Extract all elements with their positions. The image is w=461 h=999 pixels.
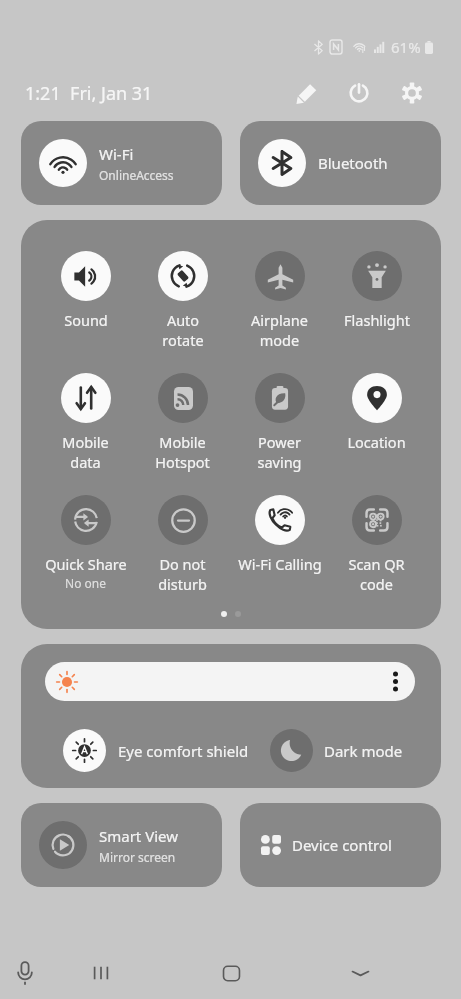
button[interactable]: Bluetooth: [240, 121, 441, 205]
button[interactable]: Smart View: [21, 803, 222, 887]
staticText: Eye comfort shield: [118, 741, 249, 761]
staticText: Wi-Fi: [99, 144, 134, 164]
staticText: OnlineAccess: [99, 167, 174, 183]
staticText: Location: [347, 432, 406, 452]
staticText: Power saving: [257, 432, 302, 472]
button[interactable]: Brightness: [45, 662, 415, 701]
staticText: No one: [65, 575, 106, 591]
button[interactable]: Eye comfort shield: [63, 729, 249, 772]
button[interactable]: Dark mode: [270, 729, 403, 772]
button[interactable]: Flashlight: [328, 251, 425, 373]
button[interactable]: Scan QR code: [328, 495, 425, 617]
staticText: Do not disturb: [158, 554, 207, 594]
staticText: Smart View: [99, 826, 179, 846]
button[interactable]: Recents: [79, 951, 123, 995]
button[interactable]: Power saving: [231, 373, 328, 495]
staticText: Auto rotate: [162, 310, 204, 350]
staticText: Quick Share: [45, 554, 127, 574]
button[interactable]: Wi-Fi: [21, 121, 222, 205]
button[interactable]: Location: [328, 373, 425, 495]
button[interactable]: Mobile Hotspot: [134, 373, 231, 495]
button[interactable]: Mobile data: [37, 373, 134, 495]
staticText: Mobile data: [62, 432, 109, 472]
button[interactable]: Home: [209, 951, 253, 995]
button[interactable]: Do not disturb: [134, 495, 231, 617]
button[interactable]: Airplane mode: [231, 251, 328, 373]
staticText: Wi-Fi Calling: [238, 554, 322, 574]
staticText: Mirror screen: [99, 849, 176, 865]
button[interactable]: Quick Share: [37, 495, 134, 617]
button[interactable]: Voice input: [3, 951, 47, 995]
staticText: Scan QR code: [348, 554, 405, 594]
button[interactable]: Edit: [285, 71, 329, 115]
staticText: 61%: [391, 37, 421, 57]
staticText: Airplane mode: [251, 310, 308, 350]
button[interactable]: Collapse: [338, 951, 382, 995]
button[interactable]: Settings: [390, 71, 434, 115]
staticText: Bluetooth: [318, 153, 388, 173]
staticText: Dark mode: [324, 741, 403, 761]
staticText: Sound: [64, 310, 108, 330]
staticText: Flashlight: [344, 310, 410, 330]
staticText: Mobile Hotspot: [155, 432, 210, 472]
staticText: Device control: [292, 835, 392, 855]
button[interactable]: Sound: [37, 251, 134, 373]
button[interactable]: Device control: [240, 803, 441, 887]
button[interactable]: Auto rotate: [134, 251, 231, 373]
button[interactable]: Power: [337, 71, 381, 115]
staticText: 1:21 Fri, Jan 31: [25, 81, 153, 106]
button[interactable]: Wi-Fi Calling: [231, 495, 328, 617]
